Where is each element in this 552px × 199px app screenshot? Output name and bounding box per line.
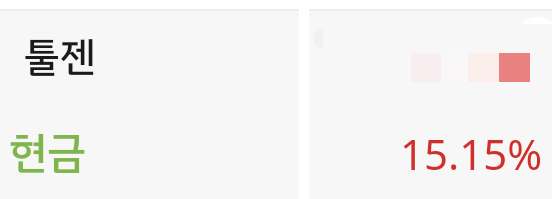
staticText: 툴젠 (24, 27, 96, 87)
staticText: 현금 (9, 120, 86, 185)
staticText: 15.15% (400, 125, 543, 182)
button[interactable]: 툴젠 (0, 11, 299, 199)
button[interactable]: 15.15% (309, 11, 552, 199)
